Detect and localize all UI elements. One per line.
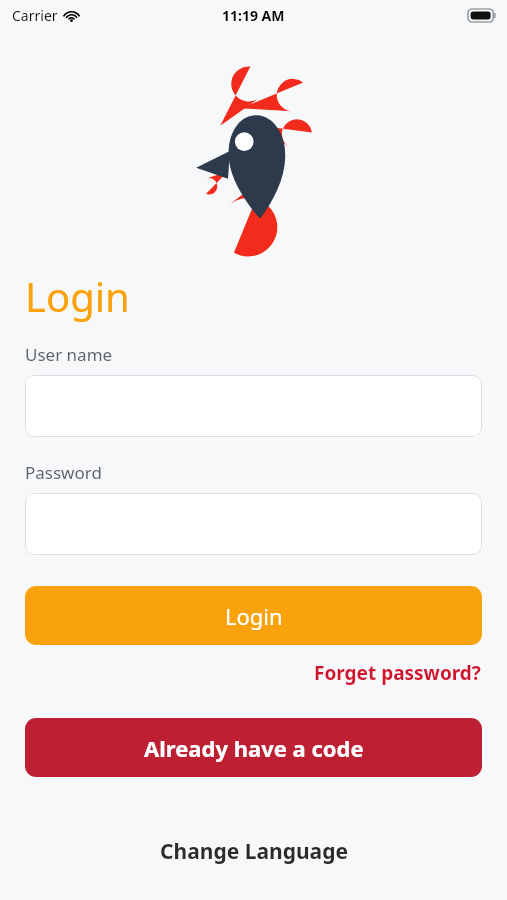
button[interactable]: Login — [25, 586, 482, 645]
staticText: Password — [25, 461, 102, 484]
other: Battery full — [468, 9, 496, 22]
staticText: Change Language — [160, 837, 348, 866]
staticText: User name — [25, 343, 113, 366]
staticText: Already have a code — [144, 733, 364, 763]
button[interactable]: Forget password? — [312, 658, 483, 688]
staticText: Login — [25, 269, 130, 323]
button[interactable] — [25, 375, 482, 437]
button[interactable]: Already have a code — [25, 718, 482, 777]
button[interactable]: Change Language — [156, 833, 352, 870]
staticText: Login — [225, 601, 283, 631]
button[interactable] — [25, 493, 482, 555]
staticText: Forget password? — [314, 660, 481, 686]
staticText: 11:19 AM — [222, 6, 285, 25]
staticText: Carrier — [12, 6, 58, 25]
